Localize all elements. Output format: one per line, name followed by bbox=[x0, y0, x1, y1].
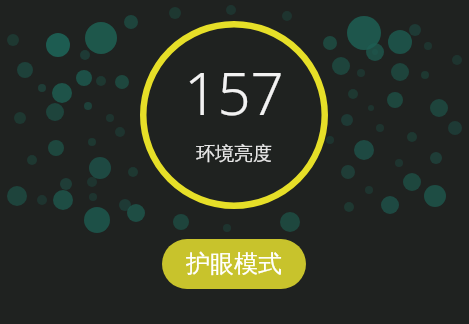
staticText: 环境亮度 bbox=[196, 142, 272, 166]
button[interactable]: 护眼模式 bbox=[162, 239, 306, 289]
staticText: 护眼模式 bbox=[186, 249, 282, 279]
staticText: 157 bbox=[184, 53, 284, 132]
